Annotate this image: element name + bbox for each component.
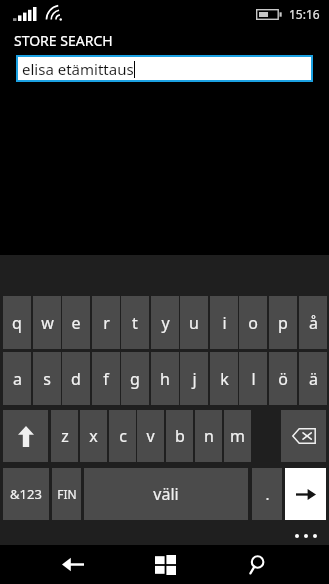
button[interactable]: h [151, 352, 179, 405]
staticText: s [43, 368, 51, 390]
button[interactable]: s [33, 352, 61, 405]
button[interactable]: w [33, 296, 61, 349]
staticText: k [220, 368, 229, 390]
button[interactable]: i [210, 296, 238, 349]
staticText: &123 [10, 485, 42, 503]
staticText: a [13, 368, 22, 390]
staticText: c [119, 425, 127, 447]
staticText: h [160, 368, 170, 390]
button[interactable]: Backspace [281, 410, 326, 462]
button[interactable]: j [180, 352, 208, 405]
button[interactable]: q [3, 296, 31, 349]
staticText: r [103, 312, 110, 334]
button[interactable]: m [224, 410, 251, 462]
staticText: t [132, 312, 138, 334]
button[interactable]: More options [288, 527, 324, 545]
staticText: g [130, 368, 140, 390]
staticText: väli [153, 483, 179, 505]
button[interactable]: f [92, 352, 120, 405]
button[interactable]: t [121, 296, 149, 349]
staticText: z [61, 425, 69, 447]
button[interactable]: väli [84, 468, 248, 520]
button[interactable]: elisa etämittaus [16, 55, 313, 82]
staticText: 15:16 [289, 6, 320, 22]
button[interactable]: &123 [3, 468, 49, 520]
button[interactable]: b [166, 410, 193, 462]
button[interactable]: n [195, 410, 222, 462]
button[interactable]: p [269, 296, 297, 349]
button[interactable]: FIN [52, 468, 81, 520]
button[interactable]: Start [120, 545, 210, 584]
staticText: elisa etämittaus [22, 59, 134, 79]
button[interactable]: z [51, 410, 78, 462]
button[interactable]: ö [269, 352, 297, 405]
staticText: FIN [57, 486, 77, 502]
staticText: ö [278, 368, 288, 390]
button[interactable]: k [210, 352, 238, 405]
button[interactable]: x [80, 410, 107, 462]
staticText: STORE SEARCH [14, 31, 113, 50]
button[interactable]: . [252, 468, 282, 520]
button[interactable]: Shift [3, 410, 48, 462]
button[interactable]: Search [211, 545, 301, 584]
staticText: i [222, 312, 227, 334]
button[interactable]: u [180, 296, 208, 349]
staticText: n [204, 425, 214, 447]
staticText: o [248, 312, 258, 334]
staticText: v [146, 425, 155, 447]
button[interactable]: r [92, 296, 120, 349]
button[interactable]: l [239, 352, 267, 405]
button[interactable]: å [299, 296, 327, 349]
staticText: b [175, 425, 185, 447]
button[interactable]: d [62, 352, 90, 405]
staticText: d [71, 368, 81, 390]
button[interactable]: o [239, 296, 267, 349]
staticText: x [89, 425, 98, 447]
staticText: u [189, 312, 199, 334]
button[interactable]: c [109, 410, 136, 462]
button[interactable]: e [62, 296, 90, 349]
staticText: j [192, 368, 197, 390]
staticText: q [12, 312, 22, 334]
staticText: p [278, 312, 288, 334]
button[interactable]: g [121, 352, 149, 405]
staticText: w [41, 312, 54, 334]
button[interactable]: y [151, 296, 179, 349]
staticText: e [71, 312, 81, 334]
staticText: l [251, 368, 256, 390]
button[interactable]: ä [299, 352, 327, 405]
staticText: å [309, 312, 318, 334]
staticText: m [230, 425, 245, 447]
button[interactable]: v [137, 410, 164, 462]
button[interactable]: Back [28, 545, 118, 584]
staticText: . [265, 484, 270, 504]
button[interactable]: a [3, 352, 31, 405]
staticText: y [161, 312, 170, 334]
staticText: ä [309, 368, 318, 390]
button[interactable]: Enter [285, 468, 326, 520]
staticText: f [103, 368, 109, 390]
